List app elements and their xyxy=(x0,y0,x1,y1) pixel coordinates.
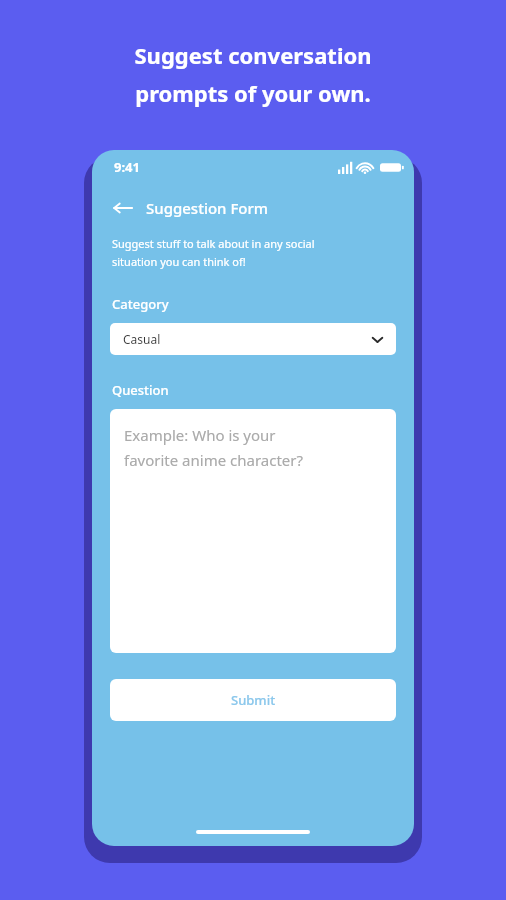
button[interactable]: Submit xyxy=(110,679,396,721)
staticText: Suggest conversation xyxy=(134,40,372,70)
staticText: Submit xyxy=(231,691,276,709)
staticText: Suggest stuff to talk about in any socia… xyxy=(112,236,315,251)
staticText: situation you can think of! xyxy=(112,254,246,269)
staticText: Category xyxy=(112,295,169,313)
staticText: Casual xyxy=(123,331,161,347)
staticText: Example: Who is your xyxy=(124,425,276,445)
staticText: favorite anime character? xyxy=(124,450,304,470)
staticText: Question xyxy=(112,381,169,399)
staticText: prompts of your own. xyxy=(135,78,371,108)
staticText: 9:41 xyxy=(114,158,140,176)
button[interactable]: Casual xyxy=(110,323,396,355)
staticText: Suggestion Form xyxy=(146,198,269,218)
button[interactable]: Example: Who is your xyxy=(110,409,396,653)
button[interactable]: Back xyxy=(109,194,137,222)
